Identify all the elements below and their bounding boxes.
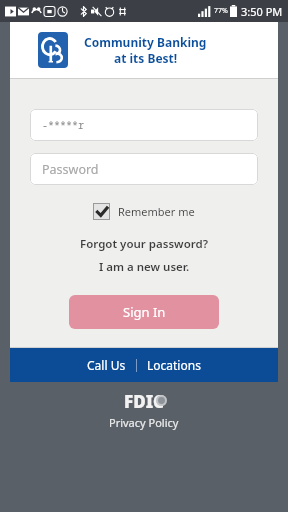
button[interactable]: FDIC: [124, 390, 165, 413]
staticText: -*****r: [42, 118, 84, 132]
button[interactable]: Privacy Policy: [103, 414, 185, 431]
button[interactable]: Forgot your password?: [74, 234, 214, 254]
button[interactable]: Remember me: [89, 201, 199, 222]
staticText: Forgot your password?: [80, 236, 208, 252]
staticText: I am a new user.: [99, 259, 190, 275]
staticText: FDIC: [124, 390, 165, 413]
button[interactable]: -*****r: [30, 109, 258, 141]
staticText: Sign In: [123, 303, 166, 321]
staticText: Community Banking: [84, 34, 207, 50]
button[interactable]: Sign In: [69, 295, 219, 329]
staticText: Remember me: [118, 204, 195, 219]
button[interactable]: Call Us: [77, 351, 136, 379]
staticText: at its Best!: [114, 50, 178, 66]
staticText: Password: [42, 161, 99, 178]
button[interactable]: Password: [30, 153, 258, 185]
button[interactable]: Locations: [137, 351, 211, 379]
staticText: 77%: [214, 6, 228, 16]
staticText: Privacy Policy: [109, 415, 179, 430]
button[interactable]: I am a new user.: [93, 257, 196, 277]
staticText: Call Us: [87, 357, 126, 373]
other: Community Banking logo: [38, 32, 68, 68]
staticText: Locations: [147, 357, 201, 373]
staticText: 3:50 PM: [241, 4, 283, 19]
